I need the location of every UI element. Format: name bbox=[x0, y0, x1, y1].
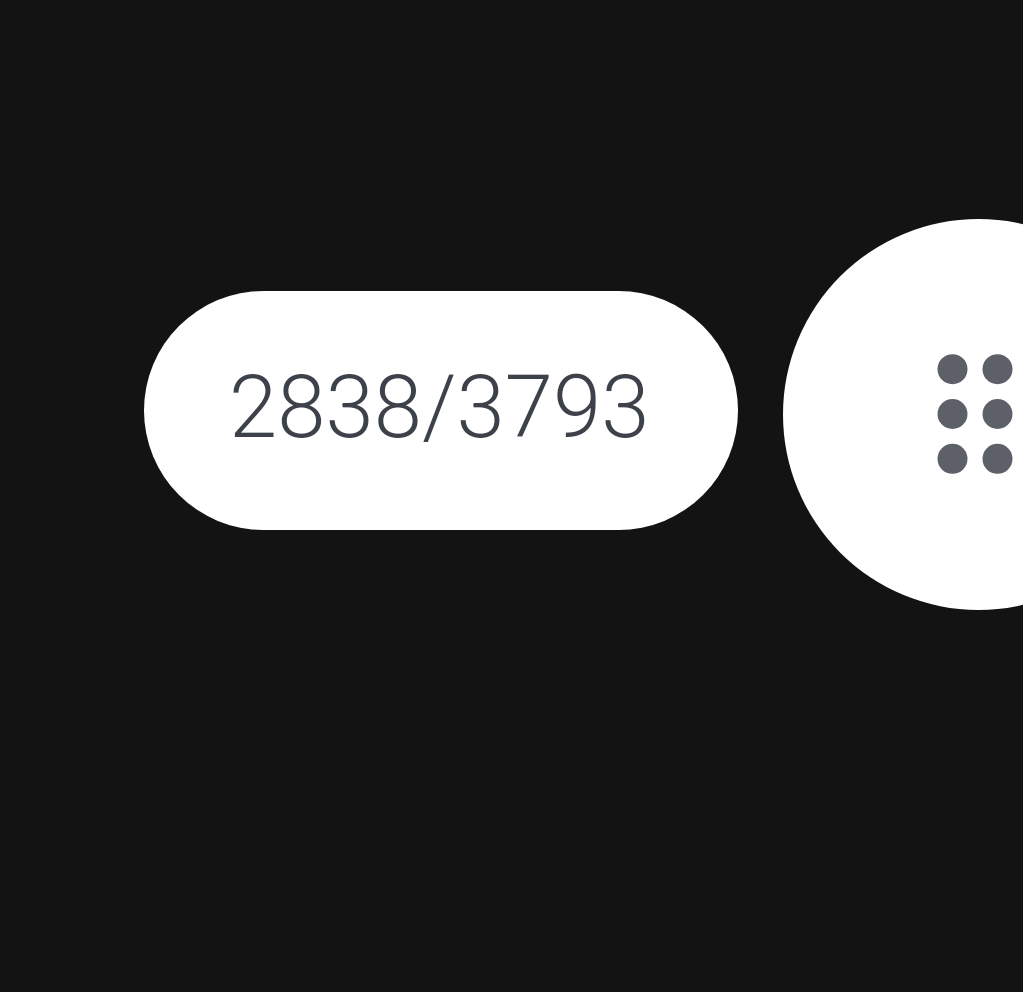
staticText: 2838/3793 bbox=[229, 356, 650, 458]
button[interactable]: 2838/3793 bbox=[144, 291, 738, 530]
button[interactable]: More options bbox=[783, 219, 1023, 610]
